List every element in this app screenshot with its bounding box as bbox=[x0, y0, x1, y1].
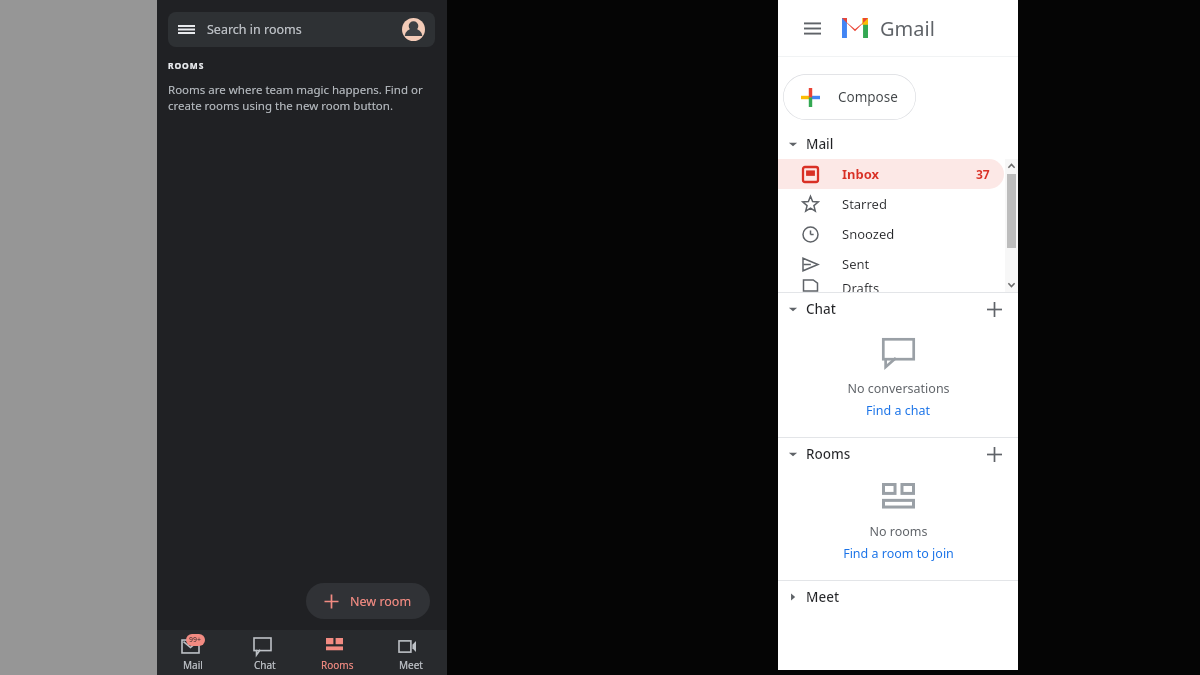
button[interactable]: Starred bbox=[778, 189, 1004, 219]
button[interactable]: Rooms bbox=[778, 438, 1018, 469]
button[interactable]: Find a chat bbox=[866, 402, 930, 419]
button[interactable]: Drafts bbox=[778, 279, 1004, 292]
staticText: Meet bbox=[399, 658, 423, 672]
staticText: Find a room to join bbox=[843, 545, 954, 562]
staticText: Find a chat bbox=[866, 402, 930, 419]
button[interactable]: Find a room to join bbox=[843, 545, 954, 562]
button[interactable]: Inbox bbox=[778, 159, 1004, 189]
button[interactable]: Mail bbox=[778, 128, 1018, 159]
button[interactable]: Rooms bbox=[301, 630, 374, 675]
button[interactable]: New room bbox=[306, 583, 430, 619]
staticText: Inbox bbox=[842, 165, 880, 183]
button[interactable]: Meet bbox=[778, 581, 1018, 612]
staticText: Starred bbox=[842, 195, 887, 213]
button[interactable]: Search in rooms bbox=[168, 12, 435, 47]
staticText: Rooms bbox=[806, 445, 851, 463]
staticText: Compose bbox=[838, 88, 898, 106]
staticText: Gmail bbox=[880, 15, 935, 42]
staticText: No conversations bbox=[847, 380, 950, 397]
button[interactable]: 99+ bbox=[157, 630, 229, 675]
button[interactable]: Add Chat bbox=[983, 298, 1005, 320]
staticText: 37 bbox=[976, 166, 990, 182]
staticText: Rooms bbox=[321, 658, 354, 672]
button[interactable]: Account bbox=[402, 18, 425, 41]
staticText: Drafts bbox=[842, 279, 880, 292]
button[interactable]: Sent bbox=[778, 249, 1004, 279]
staticText: Rooms are where team magic happens. Find… bbox=[168, 82, 436, 113]
staticText: ROOMS bbox=[168, 60, 205, 72]
button[interactable]: Chat bbox=[778, 293, 1018, 324]
button[interactable]: Add Rooms bbox=[983, 443, 1005, 465]
button[interactable]: Meet bbox=[374, 630, 447, 675]
button[interactable]: Chat bbox=[229, 630, 301, 675]
button[interactable]: Snoozed bbox=[778, 219, 1004, 249]
staticText: Mail bbox=[806, 135, 834, 153]
staticText: New room bbox=[350, 593, 412, 610]
staticText: Mail bbox=[183, 658, 203, 672]
staticText: Chat bbox=[254, 658, 276, 672]
staticText: Sent bbox=[842, 255, 870, 273]
staticText: Search in rooms bbox=[207, 21, 302, 38]
staticText: Meet bbox=[806, 588, 840, 606]
staticText: Chat bbox=[806, 300, 836, 318]
staticText: Snoozed bbox=[842, 225, 895, 243]
button[interactable]: Compose bbox=[783, 74, 916, 120]
button[interactable]: Main menu bbox=[800, 16, 824, 40]
staticText: 99+ bbox=[189, 635, 202, 645]
staticText: No rooms bbox=[869, 523, 928, 540]
